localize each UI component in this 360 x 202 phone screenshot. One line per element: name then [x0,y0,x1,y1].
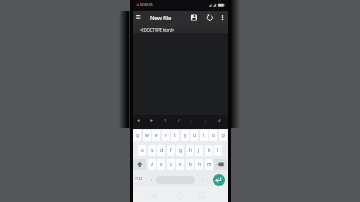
button[interactable] [213,174,225,186]
staticText: n [198,161,201,168]
button[interactable] [214,159,227,170]
staticText: t [174,132,176,139]
button[interactable]: s [148,145,156,156]
button[interactable]: p [219,130,227,141]
button[interactable]: h [186,145,194,156]
staticText: a [141,147,144,154]
button[interactable]: j [195,145,203,156]
button[interactable] [148,117,156,125]
button[interactable]: q [133,130,141,141]
button[interactable]: k [205,145,213,156]
button[interactable] [175,191,185,201]
staticText: r [165,132,167,139]
button[interactable]: g [176,145,184,156]
button[interactable]: m [205,159,213,170]
button[interactable] [219,13,227,22]
button[interactable]: / [175,117,183,125]
staticText: <!DOCTYPE html> [140,27,175,33]
staticText: u [193,132,196,139]
button[interactable]: b [186,159,194,170]
staticText: f [170,147,172,154]
button[interactable]: ; [202,117,210,125]
button[interactable]: u [190,130,198,141]
button[interactable]: 1 [161,117,169,125]
button[interactable]: . [199,173,206,184]
button[interactable]: d [157,145,165,156]
button[interactable]: t [171,130,179,141]
button[interactable]: - [188,117,196,125]
staticText: ; [205,118,207,124]
button[interactable] [198,191,208,201]
staticText: k [208,147,211,154]
staticText: , [151,175,153,182]
button[interactable]: y [181,130,189,141]
staticText: x [160,161,163,168]
staticText: q [136,132,139,139]
staticText: z [151,161,154,168]
button[interactable]: w [143,130,151,141]
staticText: m [207,161,212,168]
staticText: h [189,147,192,154]
button[interactable]: i [200,130,208,141]
button[interactable] [133,159,146,170]
button[interactable]: v [176,159,184,170]
staticText: y [184,132,187,139]
button[interactable]: , [148,173,155,184]
staticText: # [218,118,221,124]
staticText: . [202,175,204,182]
staticText: ?123 [135,176,143,181]
button[interactable]: n [195,159,203,170]
button[interactable] [189,13,198,22]
staticText: e [155,132,158,139]
button[interactable]: # [215,117,223,125]
staticText: 00:00:05 [140,3,153,7]
staticText: o [212,132,215,139]
button[interactable]: r [162,130,170,141]
staticText: 1 [134,27,137,32]
button[interactable]: o [209,130,217,141]
staticText: New file [150,14,172,22]
button[interactable]: c [167,159,175,170]
button[interactable]: x [157,159,165,170]
staticText: l [217,147,219,154]
staticText: b [189,161,192,168]
staticText: i [203,132,205,139]
staticText: d [160,147,163,154]
staticText: 1 [164,118,167,124]
button[interactable] [134,13,143,21]
staticText: g [179,147,182,154]
button[interactable]: f [167,145,175,156]
button[interactable]: a [138,145,146,156]
staticText: w [145,132,149,139]
button[interactable]: l [214,145,222,156]
button[interactable]: ?123 [133,173,145,184]
staticText: v [179,161,182,168]
button[interactable] [134,117,142,125]
staticText: j [198,147,200,154]
button[interactable] [206,13,215,22]
button[interactable] [149,191,159,201]
staticText: / [178,118,180,124]
staticText: p [222,132,225,139]
button[interactable]: e [152,130,160,141]
staticText: - [191,118,193,124]
button[interactable]: z [148,159,156,170]
staticText: s [151,147,154,154]
staticText: c [170,161,173,168]
